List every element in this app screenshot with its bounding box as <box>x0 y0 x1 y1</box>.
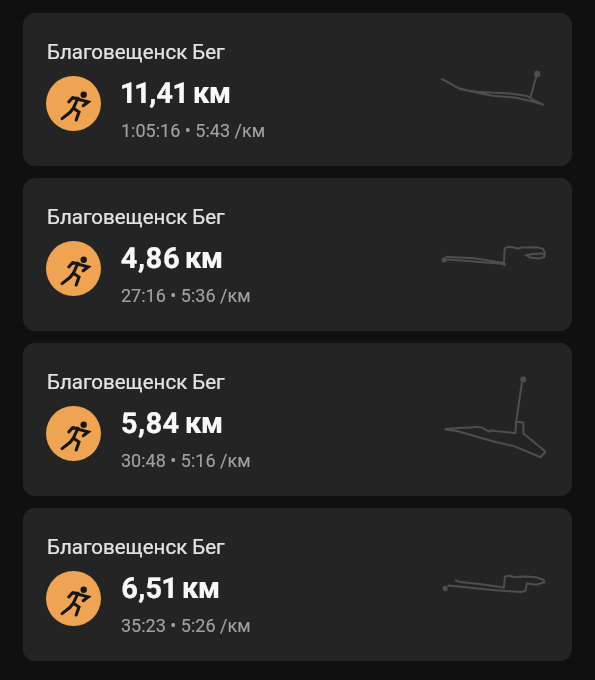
other: Route map <box>23 343 572 496</box>
staticText: 5,84 <box>121 406 180 440</box>
staticText: 4,86 <box>121 241 180 275</box>
other: Running activity <box>46 76 101 131</box>
staticText: км <box>185 406 223 440</box>
staticText: 35:23 • 5:26 /км <box>121 615 251 636</box>
button[interactable]: Благовещенск Бег <box>23 508 572 661</box>
staticText: 1:05:16 • 5:43 /км <box>121 120 265 141</box>
staticText: км <box>193 76 231 110</box>
other: Running activity <box>46 571 101 626</box>
other: Route map <box>23 13 572 166</box>
other: Route map <box>23 508 572 661</box>
staticText: Благовещенск Бег <box>47 535 225 559</box>
staticText: 11,41 <box>121 76 188 110</box>
other: Running activity <box>46 241 101 296</box>
other: Running activity <box>46 406 101 461</box>
staticText: Благовещенск Бег <box>47 205 225 229</box>
staticText: Благовещенск Бег <box>47 40 225 64</box>
staticText: 6,51 <box>121 571 177 605</box>
staticText: км <box>185 241 223 275</box>
staticText: 27:16 • 5:36 /км <box>121 285 251 306</box>
button[interactable]: Благовещенск Бег <box>23 343 572 496</box>
staticText: Благовещенск Бег <box>47 370 225 394</box>
button[interactable]: Благовещенск Бег <box>23 13 572 166</box>
staticText: км <box>182 571 220 605</box>
other: Route map <box>23 178 572 331</box>
staticText: 30:48 • 5:16 /км <box>121 450 251 471</box>
button[interactable]: Благовещенск Бег <box>23 178 572 331</box>
